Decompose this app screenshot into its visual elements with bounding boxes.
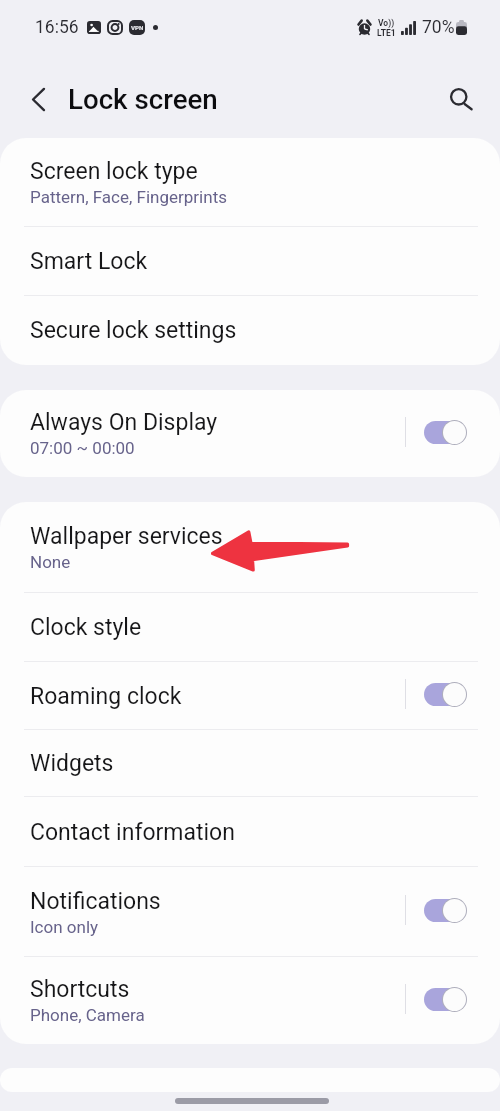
button[interactable]: Roaming clock bbox=[0, 662, 500, 730]
staticText: Contact information bbox=[30, 819, 235, 846]
button[interactable]: Search bbox=[435, 75, 483, 123]
staticText: Vo)) bbox=[378, 18, 395, 28]
staticText: Notifications bbox=[30, 888, 161, 915]
staticText: 70% bbox=[422, 17, 455, 38]
staticText: Roaming clock bbox=[30, 683, 182, 710]
button[interactable]: Back bbox=[0, 70, 76, 128]
button[interactable]: Smart Lock bbox=[0, 227, 500, 296]
staticText: Smart Lock bbox=[30, 248, 148, 275]
staticText: VPN bbox=[131, 24, 144, 31]
staticText: Lock screen bbox=[68, 83, 218, 115]
button[interactable]: Wallpaper services bbox=[0, 502, 500, 593]
staticText: Pattern, Face, Fingerprints bbox=[30, 187, 227, 207]
staticText: 07:00 ~ 00:00 bbox=[30, 438, 135, 458]
staticText: Shortcuts bbox=[30, 976, 130, 1003]
button[interactable]: Notifications bbox=[0, 867, 500, 957]
staticText: Screen lock type bbox=[30, 158, 198, 185]
staticText: None bbox=[30, 552, 71, 572]
staticText: Always On Display bbox=[30, 409, 218, 436]
button[interactable]: Widgets bbox=[0, 730, 500, 797]
staticText: Wallpaper services bbox=[30, 523, 223, 550]
button[interactable]: Clock style bbox=[0, 593, 500, 662]
staticText: Clock style bbox=[30, 614, 142, 641]
staticText: Icon only bbox=[30, 917, 99, 937]
staticText: LTE1 bbox=[377, 28, 396, 38]
button[interactable]: Secure lock settings bbox=[0, 296, 500, 365]
staticText: 16:56 bbox=[35, 17, 79, 38]
button[interactable]: Contact information bbox=[0, 797, 500, 867]
button[interactable]: Always On Display bbox=[0, 390, 500, 477]
button[interactable]: Screen lock type bbox=[0, 138, 500, 227]
staticText: Widgets bbox=[30, 750, 114, 777]
staticText: Secure lock settings bbox=[30, 317, 237, 344]
staticText: Phone, Camera bbox=[30, 1005, 145, 1025]
button[interactable]: Shortcuts bbox=[0, 957, 500, 1044]
